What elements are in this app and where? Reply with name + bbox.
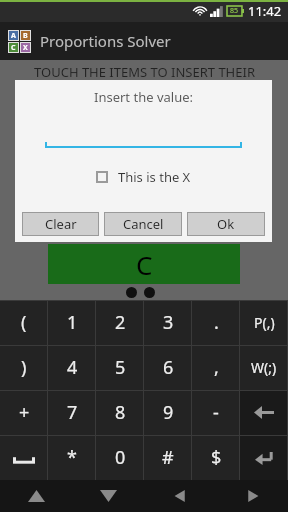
staticText: # — [162, 445, 174, 470]
button[interactable]: Up — [0, 480, 72, 512]
button[interactable]: Ok — [187, 212, 265, 236]
staticText: 7 — [67, 400, 78, 425]
button[interactable]: W(;) — [240, 345, 288, 390]
button[interactable]: * — [48, 435, 96, 480]
button[interactable]: 3 — [144, 300, 192, 345]
staticText: . — [214, 310, 219, 335]
button[interactable]: 7 — [48, 390, 96, 435]
staticText: 9 — [163, 400, 174, 425]
button[interactable]: 6 — [144, 345, 192, 390]
staticText: Insert the value: — [94, 88, 193, 106]
staticText: + — [19, 400, 30, 425]
staticText: C — [136, 247, 153, 282]
staticText: C — [11, 43, 16, 53]
button[interactable] — [45, 128, 242, 148]
button[interactable]: + — [0, 390, 48, 435]
staticText: - — [213, 400, 219, 425]
staticText: Clear — [45, 215, 77, 233]
staticText: 2 — [115, 310, 126, 335]
staticText: ) — [21, 355, 27, 380]
button[interactable] — [0, 435, 48, 480]
button[interactable]: 8 — [96, 390, 144, 435]
button[interactable]: 2 — [96, 300, 144, 345]
button[interactable]: Right — [216, 480, 288, 512]
staticText: W(;) — [251, 358, 277, 377]
button[interactable]: P(,) — [240, 300, 288, 345]
staticText: 1 — [67, 310, 78, 335]
staticText: P(,) — [254, 313, 275, 332]
staticText: 8 — [115, 400, 126, 425]
staticText: 0 — [115, 445, 126, 470]
button[interactable]: 4 — [48, 345, 96, 390]
button[interactable]: 9 — [144, 390, 192, 435]
button[interactable]: 0 — [96, 435, 144, 480]
staticText: Proportions Solver — [40, 31, 171, 51]
button[interactable]: - — [192, 390, 240, 435]
staticText: TOUCH THE ITEMS TO INSERT THEIR — [34, 63, 255, 81]
staticText: 6 — [163, 355, 174, 380]
button[interactable]: . — [192, 300, 240, 345]
button[interactable]: Clear — [22, 212, 99, 236]
staticText: 4 — [67, 355, 78, 380]
staticText: B — [23, 31, 28, 41]
button[interactable]: Left — [144, 480, 216, 512]
staticText: 5 — [115, 355, 126, 380]
button[interactable]: Enter — [240, 435, 288, 480]
button[interactable]: This is the X — [96, 168, 191, 186]
staticText: This is the X — [118, 168, 191, 186]
staticText: ( — [21, 310, 27, 335]
staticText: Cancel — [123, 215, 164, 233]
staticText: Ok — [217, 215, 235, 233]
staticText: A — [11, 31, 16, 41]
staticText: 11:42 — [248, 2, 282, 20]
button[interactable]: 5 — [96, 345, 144, 390]
button[interactable]: Down — [72, 480, 144, 512]
button[interactable]: , — [192, 345, 240, 390]
staticText: * — [67, 445, 77, 470]
button[interactable]: # — [144, 435, 192, 480]
staticText: 85 — [230, 6, 239, 16]
button[interactable]: A — [0, 22, 288, 60]
staticText: , — [214, 355, 219, 380]
button[interactable]: 1 — [48, 300, 96, 345]
button[interactable]: ( — [0, 300, 48, 345]
button[interactable]: Backspace — [240, 390, 288, 435]
button[interactable]: Cancel — [104, 212, 182, 236]
staticText: X — [23, 43, 28, 53]
staticText: 3 — [163, 310, 174, 335]
button[interactable]: $ — [192, 435, 240, 480]
button[interactable]: C — [48, 244, 240, 284]
button[interactable]: ) — [0, 345, 48, 390]
staticText: $ — [211, 445, 222, 470]
